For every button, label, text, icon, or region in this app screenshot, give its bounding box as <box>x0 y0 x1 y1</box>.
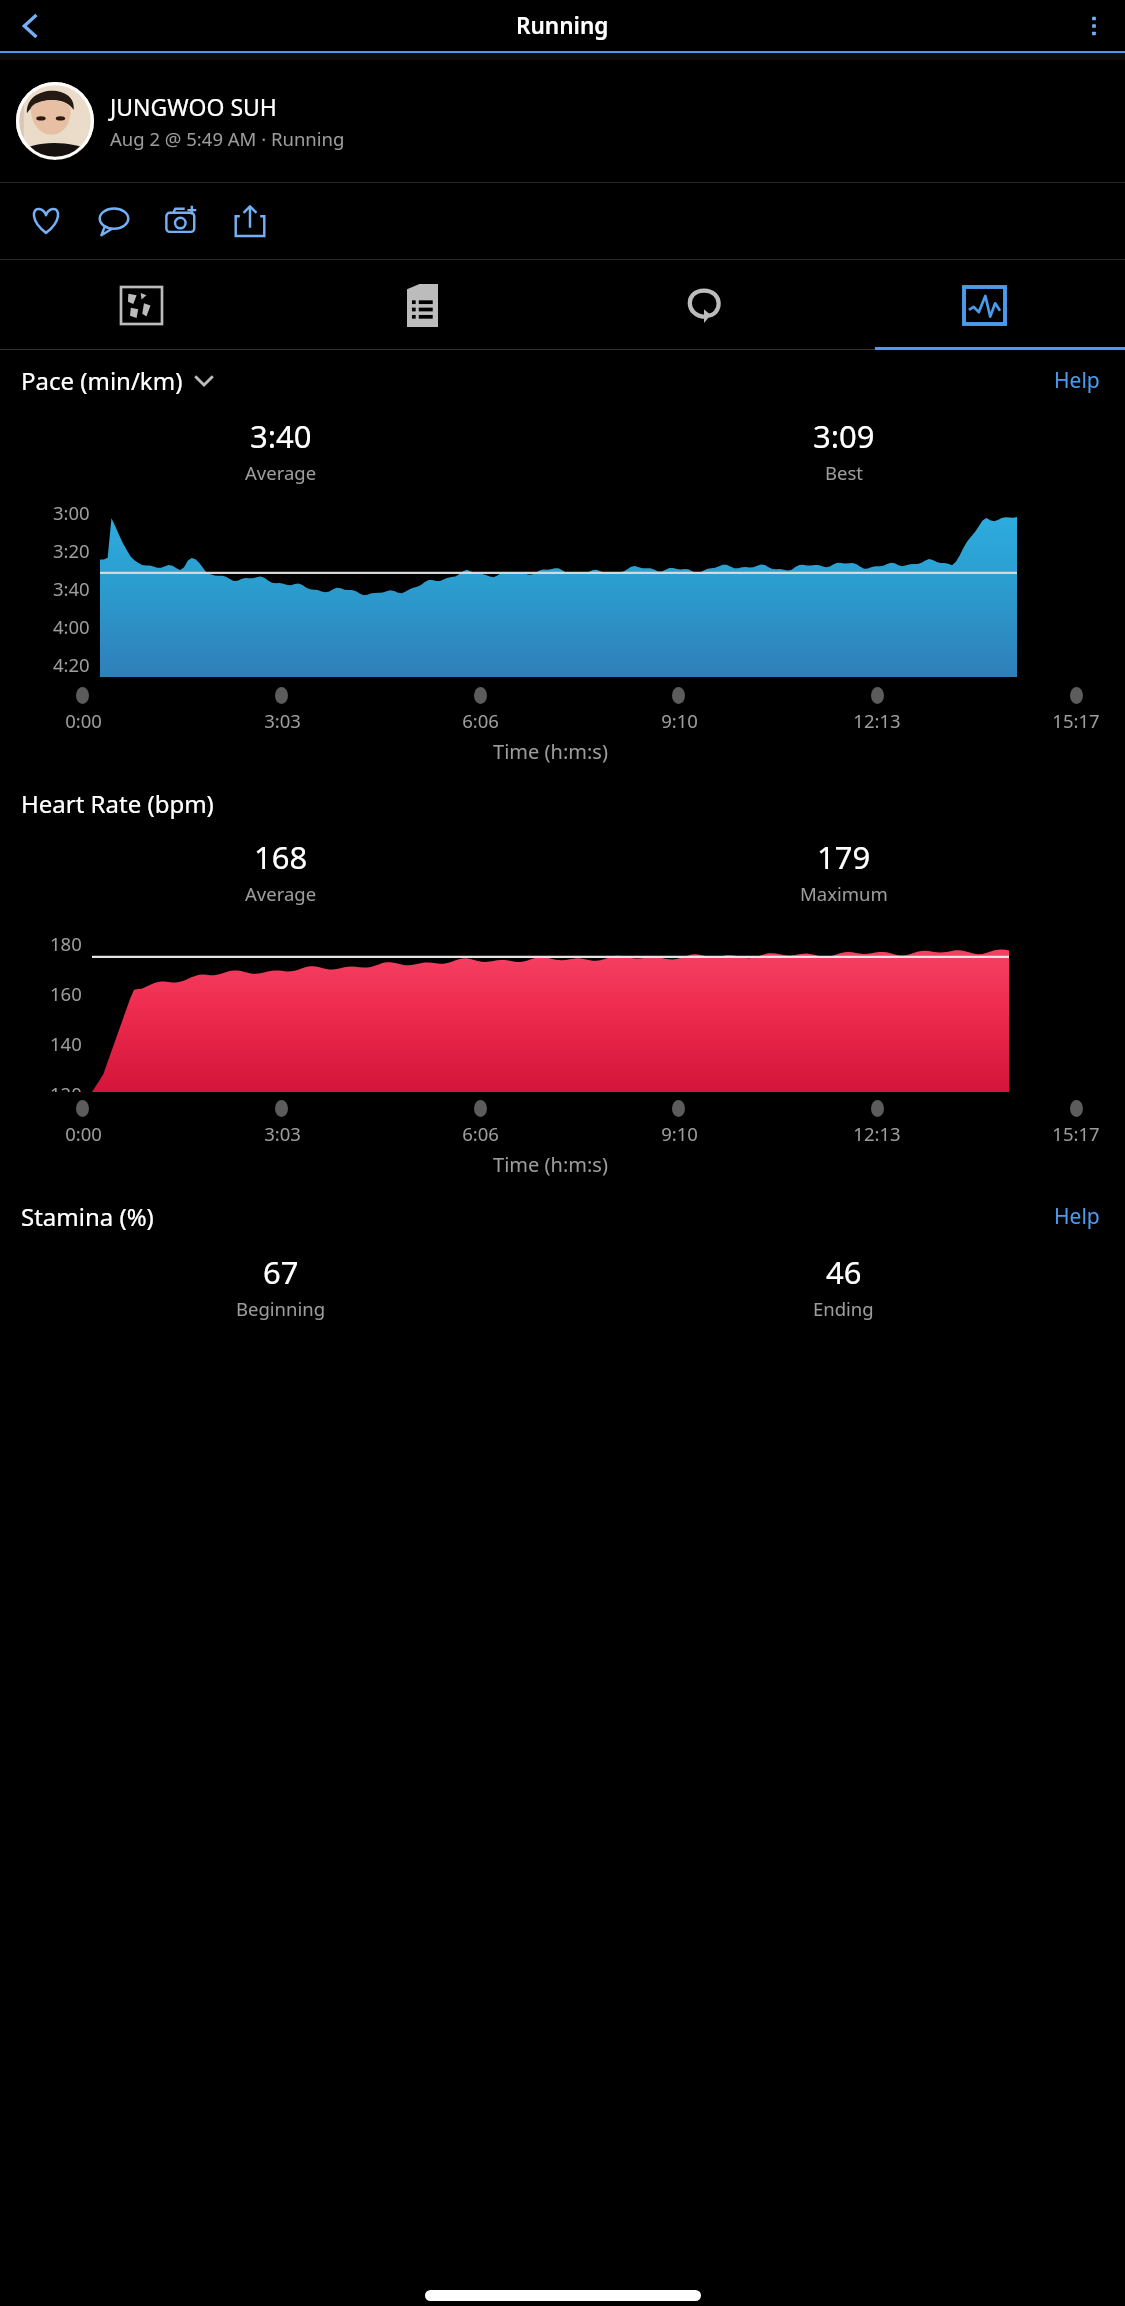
button[interactable]: Back <box>6 2 54 50</box>
staticText: 9:10 <box>661 708 698 733</box>
staticText: 6:06 <box>462 1121 499 1146</box>
staticText: 160 <box>50 981 82 1006</box>
staticText: Aug 2 @ 5:49 AM · Running <box>110 126 345 151</box>
staticText: 3:40 <box>250 415 312 457</box>
staticText: 179 <box>817 836 871 878</box>
staticText: Time (h:m:s) <box>0 738 1101 765</box>
staticText: Beginning <box>236 1296 326 1321</box>
staticText: 3:00 <box>53 500 90 525</box>
button[interactable]: Help <box>1050 362 1104 399</box>
staticText: 180 <box>50 931 82 956</box>
button[interactable]: Comment <box>80 187 148 255</box>
staticText: Pace (min/km) <box>21 364 183 397</box>
button[interactable]: Map <box>0 260 282 350</box>
button[interactable]: Like <box>12 187 80 255</box>
staticText: 168 <box>254 836 308 878</box>
staticText: 120 <box>50 1081 82 1092</box>
button[interactable]: Share <box>216 187 284 255</box>
staticText: Time (h:m:s) <box>0 1151 1101 1178</box>
button[interactable]: Details <box>282 260 563 350</box>
staticText: 12:13 <box>853 1121 901 1146</box>
staticText: 6:06 <box>462 708 499 733</box>
button[interactable]: Laps <box>563 260 844 350</box>
staticText: 0:00 <box>65 708 102 733</box>
staticText: Ending <box>813 1296 874 1321</box>
staticText: Help <box>1054 366 1100 395</box>
button[interactable]: Help <box>1050 1198 1104 1235</box>
staticText: 0:00 <box>65 1121 102 1146</box>
button[interactable]: Pace (min/km) <box>21 364 214 397</box>
button[interactable]: More options <box>1071 3 1117 49</box>
staticText: 15:17 <box>1052 708 1100 733</box>
staticText: 9:10 <box>661 1121 698 1146</box>
button[interactable]: Charts <box>844 260 1125 350</box>
button[interactable]: JUNGWOO SUH <box>0 60 1125 182</box>
staticText: 3:09 <box>813 415 875 457</box>
staticText: Maximum <box>800 881 888 906</box>
staticText: 15:17 <box>1052 1121 1100 1146</box>
staticText: 3:40 <box>53 576 90 601</box>
staticText: Best <box>825 460 863 485</box>
staticText: 3:20 <box>53 538 90 563</box>
staticText: Help <box>1054 1202 1100 1231</box>
staticText: Average <box>245 460 317 485</box>
staticText: 4:00 <box>53 614 90 639</box>
staticText: 3:03 <box>264 708 301 733</box>
staticText: 12:13 <box>853 708 901 733</box>
staticText: 46 <box>826 1251 862 1293</box>
staticText: Running <box>516 10 609 41</box>
button[interactable]: Add photo <box>148 187 216 255</box>
staticText: Heart Rate (bpm) <box>21 787 214 820</box>
staticText: 4:20 <box>53 652 90 677</box>
staticText: 67 <box>263 1251 299 1293</box>
staticText: 140 <box>50 1031 82 1056</box>
staticText: Average <box>245 881 317 906</box>
staticText: 3:03 <box>264 1121 301 1146</box>
staticText: JUNGWOO SUH <box>110 91 277 122</box>
staticText: Stamina (%) <box>21 1200 154 1233</box>
